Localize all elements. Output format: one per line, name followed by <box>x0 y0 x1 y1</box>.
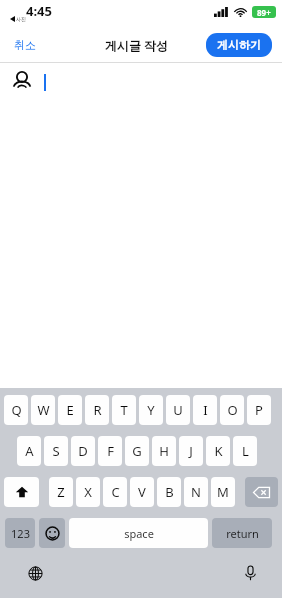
button[interactable]: 취소 <box>0 32 50 58</box>
staticText: G <box>132 442 142 460</box>
staticText: 4:45 <box>26 2 52 20</box>
button[interactable]: Shift <box>4 477 39 507</box>
staticText: 123 <box>11 526 30 541</box>
staticText: Q <box>11 401 22 419</box>
staticText: O <box>227 401 238 419</box>
button[interactable]: M <box>211 477 235 507</box>
staticText: J <box>189 442 193 460</box>
button[interactable]: W <box>31 395 55 425</box>
staticText: X <box>84 483 92 501</box>
button[interactable]: L <box>233 436 257 466</box>
staticText: I <box>203 401 208 419</box>
button[interactable]: O <box>220 395 244 425</box>
button[interactable]: D <box>71 436 95 466</box>
button[interactable]: Q <box>4 395 28 425</box>
button[interactable]: R <box>85 395 109 425</box>
button[interactable]: I <box>193 395 217 425</box>
staticText: space <box>124 526 154 541</box>
staticText: S <box>52 442 60 460</box>
button[interactable]: H <box>152 436 176 466</box>
staticText: M <box>217 483 229 501</box>
staticText: K <box>214 442 223 460</box>
staticText: D <box>78 442 88 460</box>
staticText: C <box>111 483 120 501</box>
staticText: L <box>242 442 249 460</box>
button[interactable]: A <box>17 436 41 466</box>
staticText: H <box>159 442 169 460</box>
staticText: R <box>93 401 102 419</box>
staticText: 사진 <box>16 16 26 22</box>
button[interactable]: 123 <box>5 518 35 548</box>
button[interactable]: N <box>184 477 208 507</box>
button[interactable]: E <box>58 395 82 425</box>
staticText: Z <box>57 483 65 501</box>
staticText: 게시하기 <box>217 38 261 52</box>
button[interactable]: Backspace <box>245 477 278 507</box>
button[interactable]: Y <box>139 395 163 425</box>
button[interactable]: Emoji <box>39 518 65 548</box>
button[interactable]: V <box>130 477 154 507</box>
button[interactable]: Dictate <box>241 561 260 585</box>
staticText: V <box>138 483 146 501</box>
staticText: N <box>191 483 201 501</box>
button[interactable]: return <box>212 518 272 548</box>
staticText: F <box>107 442 114 460</box>
button[interactable]: Z <box>49 477 73 507</box>
staticText: P <box>255 401 263 419</box>
button[interactable]: C <box>103 477 127 507</box>
staticText: B <box>165 483 174 501</box>
button[interactable]: F <box>98 436 122 466</box>
staticText: W <box>37 401 50 419</box>
button[interactable]: T <box>112 395 136 425</box>
button[interactable]: J <box>179 436 203 466</box>
staticText: 89+ <box>257 7 271 18</box>
button[interactable]: B <box>157 477 181 507</box>
staticText: 게시글 작성 <box>105 37 169 53</box>
staticText: Y <box>147 401 155 419</box>
button[interactable]: S <box>44 436 68 466</box>
button[interactable]: P <box>247 395 271 425</box>
staticText: E <box>66 401 74 419</box>
staticText: A <box>25 442 34 460</box>
staticText: U <box>173 401 183 419</box>
button[interactable]: X <box>76 477 100 507</box>
button[interactable]: K <box>206 436 230 466</box>
button[interactable]: space <box>69 518 208 548</box>
staticText: 취소 <box>14 38 36 52</box>
button[interactable]: 게시하기 <box>206 33 272 57</box>
button[interactable]: G <box>125 436 149 466</box>
staticText: return <box>226 526 259 541</box>
button[interactable]: U <box>166 395 190 425</box>
staticText: T <box>120 401 128 419</box>
button[interactable]: Change keyboard language <box>24 562 47 585</box>
